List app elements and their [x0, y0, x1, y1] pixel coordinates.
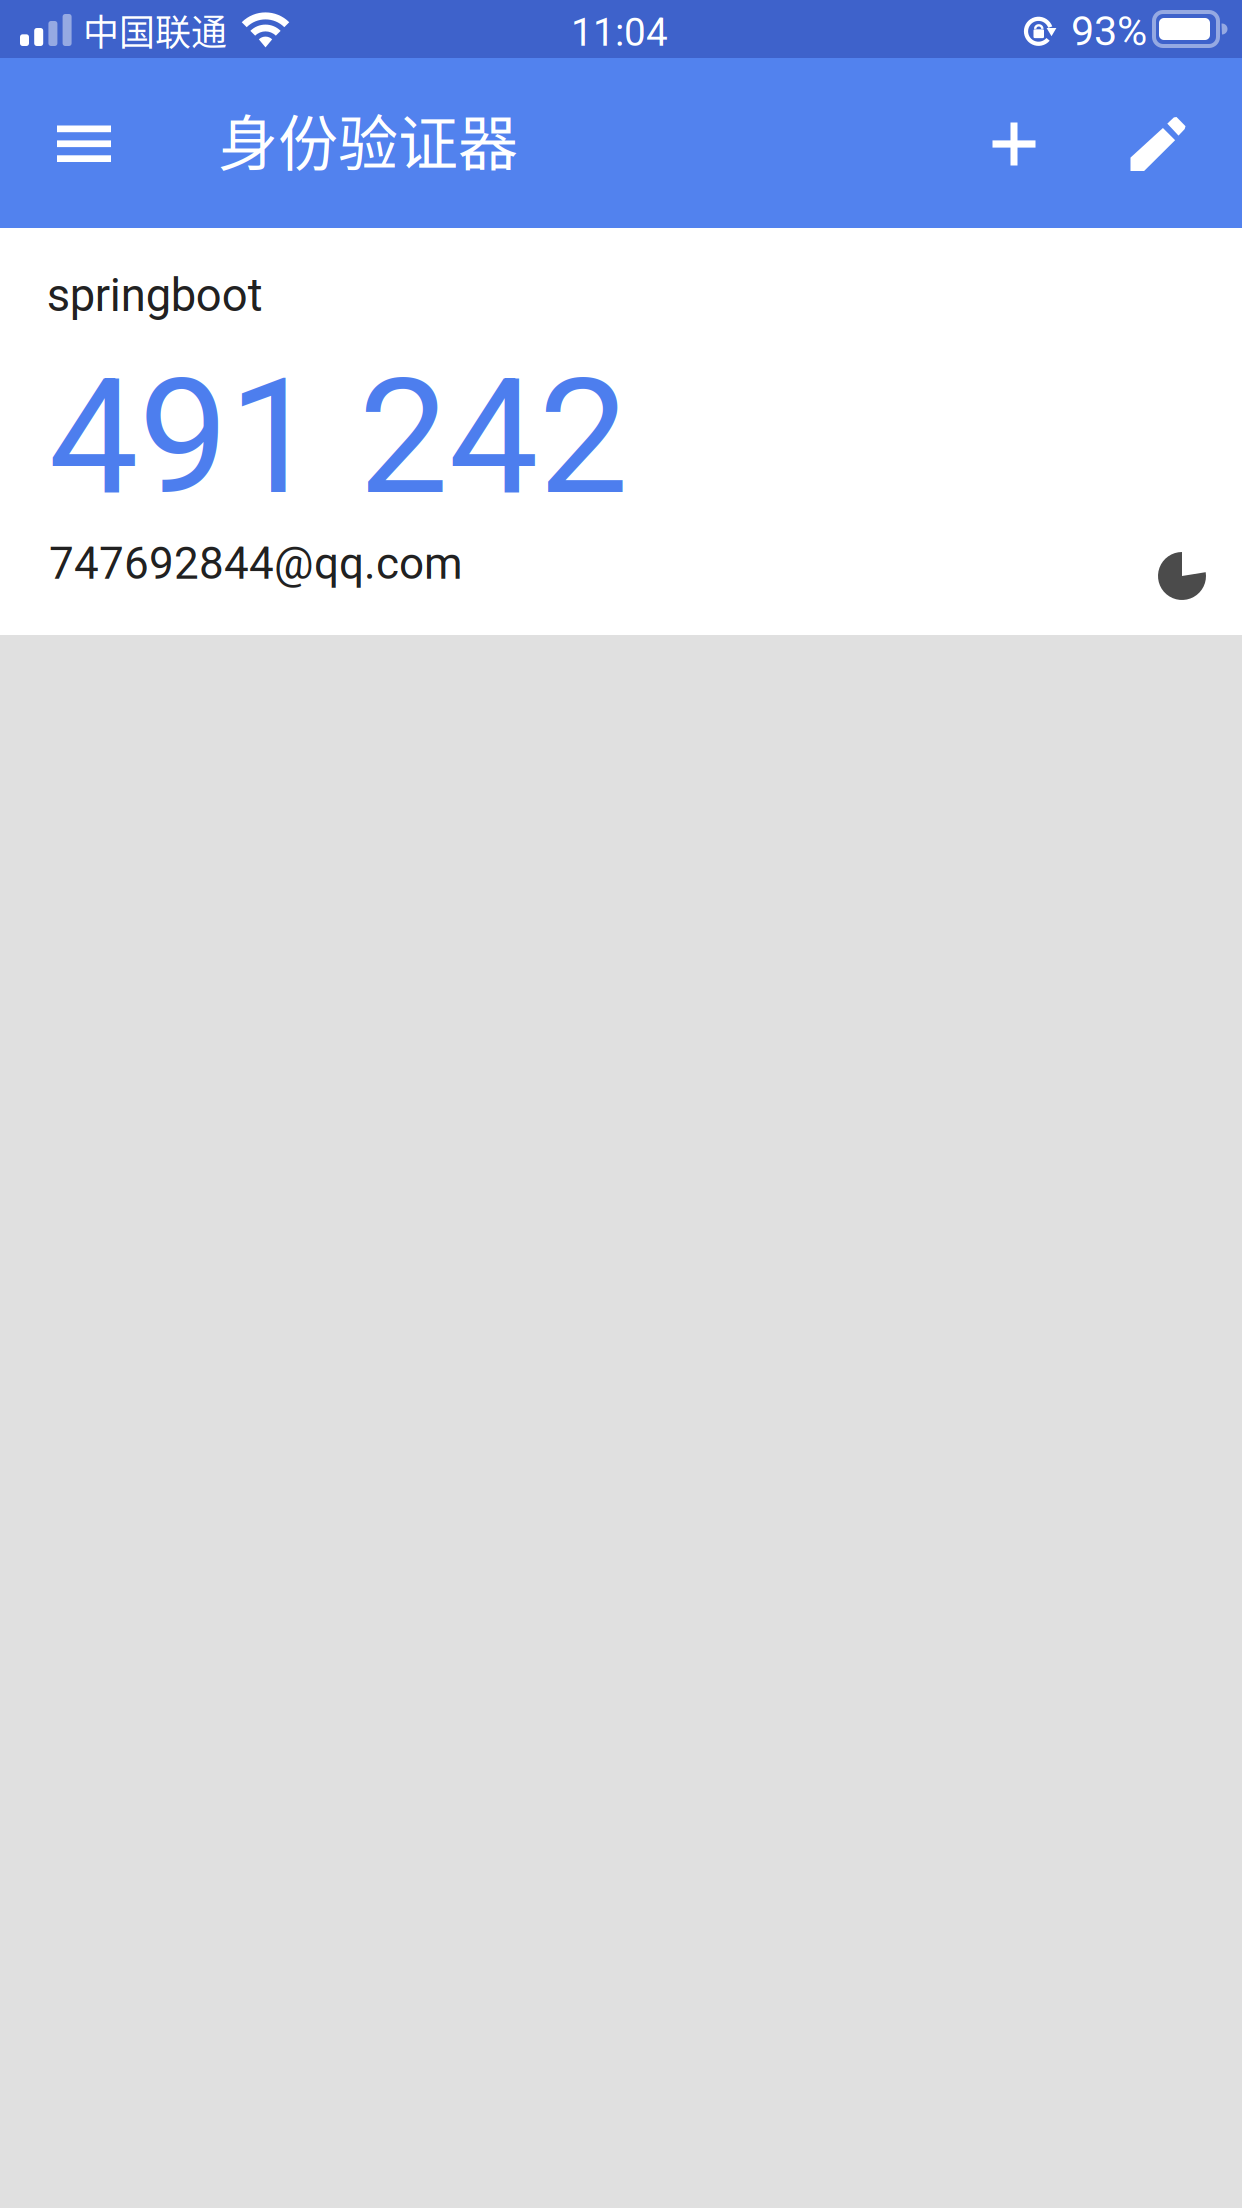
staticText: 491 242 [48, 344, 628, 531]
staticText: 93% [1071, 7, 1147, 55]
staticText: 11:04 [571, 10, 668, 55]
staticText: 身份验证器 [218, 96, 518, 183]
staticText: 747692844@qq.com [49, 538, 463, 590]
staticText: 中国联通 [83, 4, 227, 56]
button[interactable]: 编辑 [1105, 58, 1215, 228]
button[interactable]: 添加 [959, 58, 1069, 228]
button[interactable]: 菜单 [30, 58, 138, 228]
staticText: springboot [47, 269, 263, 322]
button[interactable]: springboot [0, 228, 1242, 635]
